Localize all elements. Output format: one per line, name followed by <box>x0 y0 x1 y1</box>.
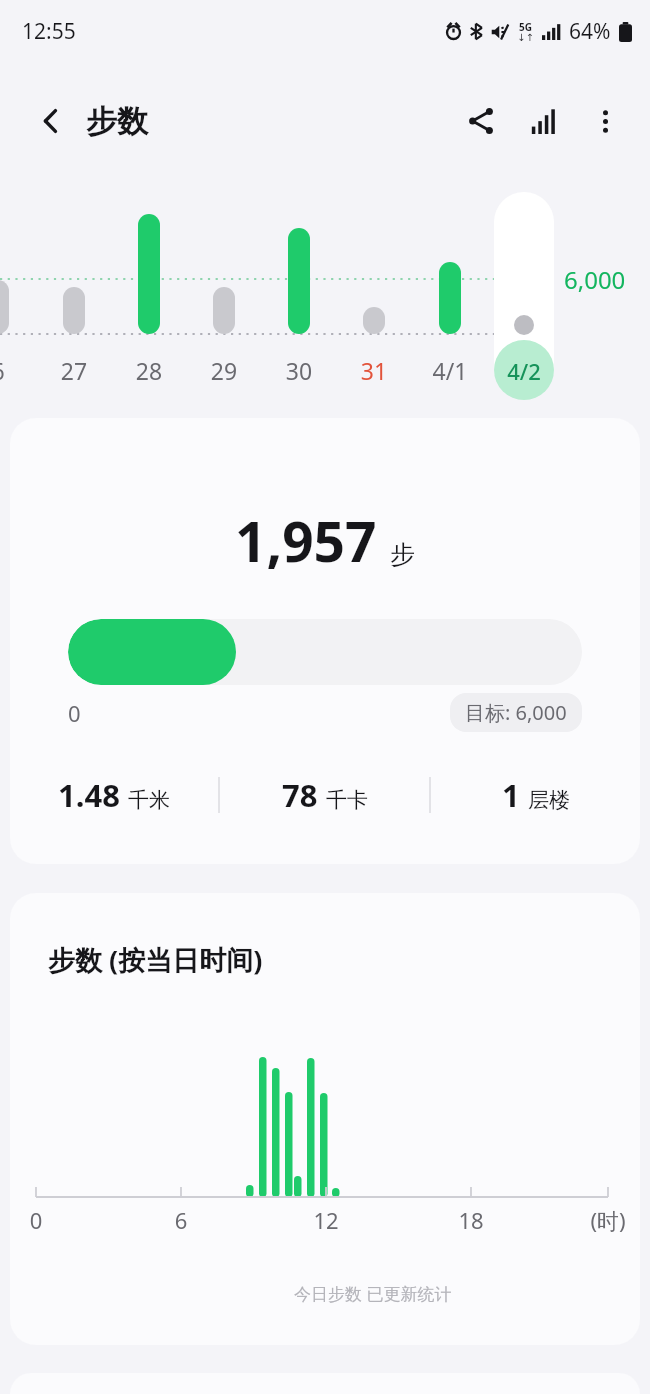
button[interactable]: 1 <box>431 774 640 816</box>
staticText: 步 <box>390 539 415 570</box>
staticText: 步数 (按当日时间) <box>48 941 263 978</box>
staticText: 0 <box>68 698 81 728</box>
staticText: 18 <box>441 1205 501 1235</box>
button[interactable]: More options <box>580 96 630 146</box>
staticText: 步数 <box>86 102 148 141</box>
staticText: 27 <box>42 355 106 386</box>
staticText: ↓↑ <box>517 32 534 44</box>
staticText: 5G <box>519 20 532 34</box>
staticText: 78 <box>282 774 318 816</box>
staticText: 12 <box>296 1205 356 1235</box>
staticText: 1,957 <box>235 503 377 578</box>
staticText: 30 <box>267 355 331 386</box>
button[interactable]: 6 <box>0 180 650 410</box>
staticText: 31 <box>342 355 406 386</box>
staticText: 层楼 <box>528 787 570 813</box>
staticText: 1 <box>502 774 520 816</box>
staticText: 今日步数 已更新统计 <box>294 1282 452 1305</box>
button[interactable]: Chart <box>518 96 568 146</box>
button[interactable]: 步数 (按当日时间) <box>10 893 640 1345</box>
staticText: 64% <box>569 17 611 46</box>
staticText: 6 <box>151 1205 211 1235</box>
staticText: 29 <box>192 355 256 386</box>
button[interactable]: 1,957 <box>10 418 640 864</box>
staticText: 6 <box>0 355 30 386</box>
staticText: 28 <box>117 355 181 386</box>
button[interactable]: 78 <box>220 774 429 816</box>
staticText: 千米 <box>128 787 170 813</box>
button[interactable]: Share <box>456 96 506 146</box>
button[interactable]: 1.48 <box>10 774 218 816</box>
staticText: 4/2 <box>492 356 556 386</box>
button[interactable]: Back <box>26 96 76 146</box>
staticText: 4/1 <box>418 355 482 386</box>
staticText: 目标: 6,000 <box>465 699 567 726</box>
staticText: 12:55 <box>22 17 76 46</box>
staticText: (时) <box>578 1205 638 1235</box>
staticText: 0 <box>10 1205 66 1235</box>
staticText: 1.48 <box>58 774 120 816</box>
staticText: 6,000 <box>564 263 626 296</box>
staticText: 千卡 <box>326 787 368 813</box>
